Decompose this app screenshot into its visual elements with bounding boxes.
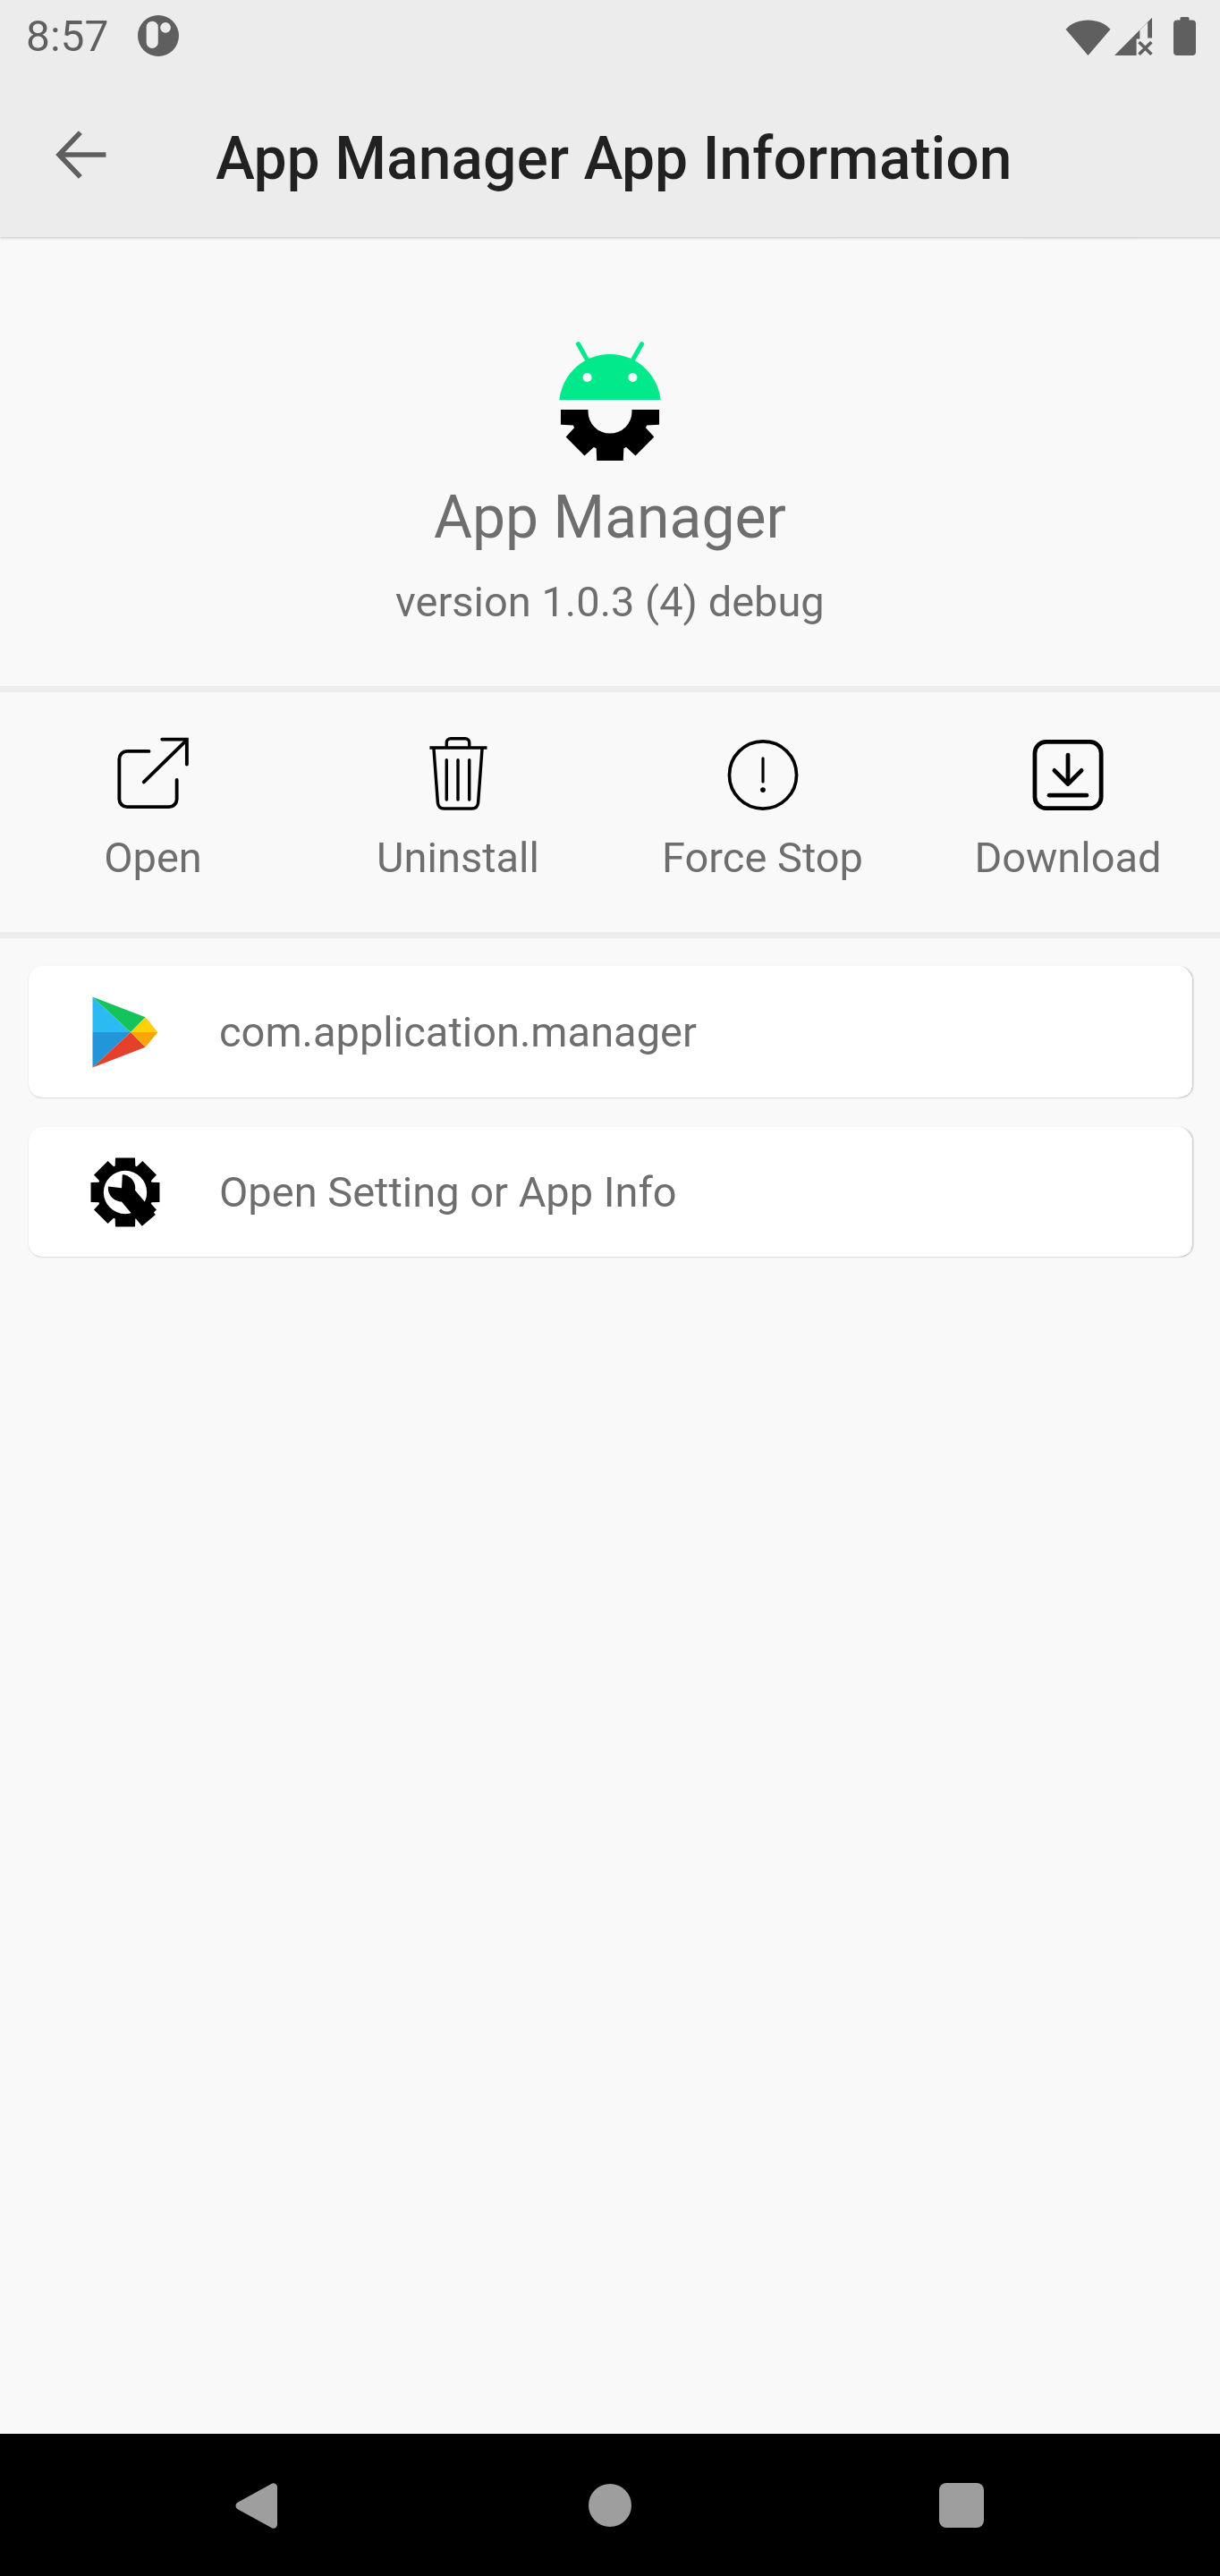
button[interactable]: Recent apps: [917, 2461, 1006, 2550]
staticText: Download: [974, 833, 1162, 882]
staticText: Open Setting or App Info: [219, 1167, 677, 1216]
staticText: App Manager App Information: [216, 124, 1012, 193]
staticText: version 1.0.3 (4) debug: [395, 577, 825, 626]
staticText: com.application.manager: [219, 1007, 697, 1056]
button[interactable]: Navigate up: [34, 106, 131, 203]
staticText: 8:57: [26, 11, 109, 61]
button[interactable]: Force Stop: [610, 692, 915, 932]
button[interactable]: Home: [565, 2461, 655, 2550]
button[interactable]: Open Setting or App Info: [29, 1127, 1191, 1257]
staticText: Open: [104, 833, 202, 882]
button[interactable]: Open: [0, 692, 305, 932]
button[interactable]: Download: [915, 692, 1220, 932]
staticText: Uninstall: [377, 833, 539, 882]
staticText: App Manager: [434, 483, 786, 552]
button[interactable]: Uninstall: [305, 692, 610, 932]
staticText: Force Stop: [662, 833, 863, 882]
button[interactable]: com.application.manager: [29, 966, 1191, 1097]
button[interactable]: Back: [210, 2461, 300, 2550]
